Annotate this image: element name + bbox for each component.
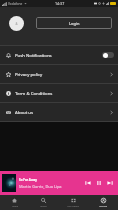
staticText: Search bbox=[40, 205, 47, 208]
button[interactable]: Profile bbox=[9, 16, 24, 31]
staticText: Account bbox=[99, 205, 107, 208]
staticText: So Far Away bbox=[19, 178, 38, 182]
staticText: Push Notifications bbox=[15, 52, 52, 58]
button[interactable]: Previous bbox=[84, 179, 92, 187]
button[interactable]: Your Library bbox=[58, 195, 88, 210]
button[interactable]: About us bbox=[0, 103, 118, 121]
staticText: Login bbox=[69, 21, 80, 26]
button[interactable]: Account bbox=[88, 195, 118, 210]
button[interactable]: Home bbox=[0, 195, 29, 210]
staticText: About us bbox=[15, 109, 34, 115]
button[interactable]: Login bbox=[36, 17, 112, 29]
staticText: Home bbox=[12, 205, 18, 208]
staticText: Term & Conditions bbox=[15, 90, 53, 96]
button[interactable]: Pause bbox=[95, 179, 103, 187]
staticText: 14:37 bbox=[55, 1, 65, 6]
button[interactable]: So Far Away bbox=[0, 171, 118, 195]
button[interactable]: Search bbox=[29, 195, 58, 210]
staticText: Martin Garrix, Dua Lipa bbox=[19, 184, 62, 189]
staticText: Privacy policy bbox=[15, 71, 43, 77]
button[interactable]: Next bbox=[106, 179, 114, 187]
staticText: Your Library bbox=[67, 205, 79, 208]
button[interactable]: Term & Conditions bbox=[0, 84, 118, 102]
staticText: Vodafone bbox=[8, 2, 23, 6]
button[interactable]: Push Notifications bbox=[0, 46, 118, 64]
button[interactable]: Privacy policy bbox=[0, 65, 118, 83]
